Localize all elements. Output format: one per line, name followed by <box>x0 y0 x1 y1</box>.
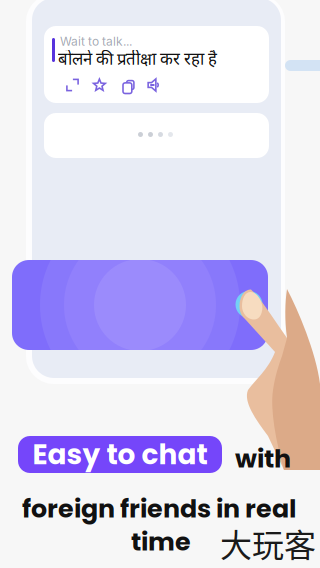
staticText: time <box>131 524 191 559</box>
button[interactable]: Expand <box>59 77 86 93</box>
button[interactable]: Speak <box>140 77 167 93</box>
staticText: Easy to chat <box>32 435 207 474</box>
staticText: with <box>235 441 291 476</box>
staticText: 大玩客 <box>220 520 316 566</box>
staticText: foreign friends in real <box>22 491 296 526</box>
staticText: बोलने की प्रतीक्षा कर रहा है <box>58 47 217 70</box>
staticText: Wait to talk... <box>60 34 132 48</box>
button[interactable]: Favorite <box>86 77 113 93</box>
button[interactable]: Copy <box>113 77 140 93</box>
button[interactable]: Hold to talk <box>12 260 268 350</box>
